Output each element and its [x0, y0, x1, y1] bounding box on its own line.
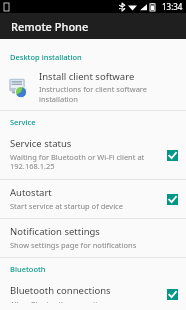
- staticText: Bluetooth connections: [10, 284, 111, 297]
- staticText: Install client software: [39, 70, 135, 83]
- staticText: Autostart: [10, 186, 52, 199]
- button[interactable]: Autostart: [0, 180, 186, 218]
- button[interactable]: Bluetooth connections: [0, 278, 186, 310]
- staticText: Service status: [10, 137, 72, 150]
- button[interactable]: Toggle: [165, 192, 179, 206]
- staticText: Start service at startup of device: [10, 201, 123, 211]
- staticText: Waiting for Bluetooth or Wi-Fi client at…: [10, 152, 145, 172]
- staticText: Instructions for client software install…: [39, 84, 176, 104]
- button[interactable]: Service status: [0, 131, 186, 179]
- button[interactable]: Toggle: [165, 287, 179, 301]
- button[interactable]: Toggle: [165, 148, 179, 162]
- button[interactable]: Notification settings: [0, 219, 186, 257]
- staticText: Bluetooth: [10, 264, 46, 274]
- staticText: Service: [10, 117, 36, 127]
- staticText: Remote Phone: [11, 19, 89, 34]
- other: Install client software: [8, 77, 29, 98]
- button[interactable]: Install client software: [0, 66, 186, 110]
- staticText: Allow Bluetooth connections: [10, 299, 111, 303]
- staticText: 13:34: [162, 1, 183, 12]
- staticText: Desktop installation: [10, 52, 82, 62]
- staticText: Notification settings: [10, 225, 100, 238]
- staticText: Show settings page for notifications: [10, 240, 137, 250]
